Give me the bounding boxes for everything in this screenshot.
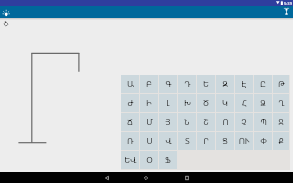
- staticText: Չ: [241, 116, 247, 127]
- staticText: Ձ: [260, 97, 266, 108]
- button[interactable]: Ս: [140, 132, 158, 150]
- staticText: Յ: [165, 116, 171, 127]
- button[interactable]: Ց: [216, 132, 234, 150]
- button[interactable]: Ք: [273, 132, 289, 150]
- button[interactable]: Ղ: [273, 94, 289, 112]
- button[interactable]: Back: [99, 172, 114, 183]
- staticText: Փ: [260, 135, 267, 146]
- button[interactable]: Ծ: [197, 94, 215, 112]
- button[interactable]: Ն: [178, 113, 196, 131]
- button[interactable]: Լ: [159, 94, 177, 112]
- staticText: Ճ: [127, 116, 133, 127]
- staticText: Զ: [222, 78, 228, 89]
- staticText: Գ: [165, 78, 172, 89]
- staticText: Օ: [146, 154, 153, 165]
- button[interactable]: Restart game: [0, 18, 11, 29]
- staticText: Ո: [222, 116, 229, 127]
- staticText: Ջ: [278, 116, 284, 127]
- staticText: ՈՒ: [238, 135, 250, 146]
- staticText: Բ: [146, 78, 152, 89]
- staticText: Դ: [184, 78, 191, 89]
- staticText: Ա: [127, 78, 134, 89]
- staticText: Թ: [278, 78, 285, 89]
- staticText: Ժ: [127, 97, 134, 108]
- button[interactable]: Գ: [159, 75, 177, 93]
- button[interactable]: Է: [235, 75, 253, 93]
- staticText: Մ: [146, 116, 153, 127]
- button[interactable]: Hint: [1, 7, 11, 17]
- staticText: ԵՎ: [124, 154, 137, 165]
- staticText: Ց: [222, 135, 228, 146]
- staticText: Ֆ: [165, 154, 171, 165]
- staticText: Ե: [203, 78, 209, 89]
- staticText: Ք: [278, 135, 284, 146]
- button[interactable]: Recent apps: [179, 172, 194, 183]
- staticText: Շ: [203, 116, 209, 127]
- staticText: Վ: [165, 135, 172, 146]
- staticText: Կ: [222, 97, 228, 108]
- button[interactable]: Ո: [216, 113, 234, 131]
- button[interactable]: Խ: [178, 94, 196, 112]
- button[interactable]: Ռ: [121, 132, 139, 150]
- button[interactable]: Պ: [254, 113, 272, 131]
- button[interactable]: Օ: [140, 151, 158, 169]
- button[interactable]: Թ: [273, 75, 289, 93]
- button[interactable]: Շ: [197, 113, 215, 131]
- button[interactable]: Ի: [140, 94, 158, 112]
- button[interactable]: Ը: [254, 75, 272, 93]
- button[interactable]: ՈՒ: [235, 132, 253, 150]
- staticText: Ծ: [203, 97, 209, 108]
- staticText: Ն: [184, 116, 190, 127]
- button[interactable]: Ճ: [121, 113, 139, 131]
- staticText: Ի: [146, 97, 152, 108]
- button[interactable]: Հ: [235, 94, 253, 112]
- button[interactable]: Յ: [159, 113, 177, 131]
- button[interactable]: Home: [138, 172, 153, 183]
- staticText: Լ: [166, 97, 170, 108]
- button[interactable]: Տ: [178, 132, 196, 150]
- staticText: Ր: [203, 135, 209, 146]
- staticText: Ս: [146, 135, 153, 146]
- staticText: Հ: [242, 97, 247, 108]
- staticText: Ղ: [278, 97, 285, 108]
- staticText: 5:39: [284, 1, 292, 6]
- button[interactable]: Ժ: [121, 94, 139, 112]
- staticText: Տ: [185, 135, 190, 146]
- button[interactable]: Բ: [140, 75, 158, 93]
- staticText: Ը: [260, 78, 266, 89]
- button[interactable]: Ֆ: [159, 151, 177, 169]
- button[interactable]: Մ: [140, 113, 158, 131]
- button[interactable]: Ջ: [273, 113, 289, 131]
- button[interactable]: Զ: [216, 75, 234, 93]
- staticText: Ռ: [127, 135, 134, 146]
- staticText: Պ: [260, 116, 267, 127]
- button[interactable]: Չ: [235, 113, 253, 131]
- button[interactable]: Դ: [178, 75, 196, 93]
- button[interactable]: Կ: [216, 94, 234, 112]
- button[interactable]: Վ: [159, 132, 177, 150]
- button[interactable]: Ա: [121, 75, 139, 93]
- staticText: Է: [241, 78, 247, 89]
- button[interactable]: ԵՎ: [121, 151, 139, 169]
- button[interactable]: Ե: [197, 75, 215, 93]
- button[interactable]: Ր: [197, 132, 215, 150]
- button[interactable]: Ձ: [254, 94, 272, 112]
- staticText: Խ: [184, 97, 191, 108]
- button[interactable]: High scores: [281, 6, 291, 16]
- button[interactable]: Փ: [254, 132, 272, 150]
